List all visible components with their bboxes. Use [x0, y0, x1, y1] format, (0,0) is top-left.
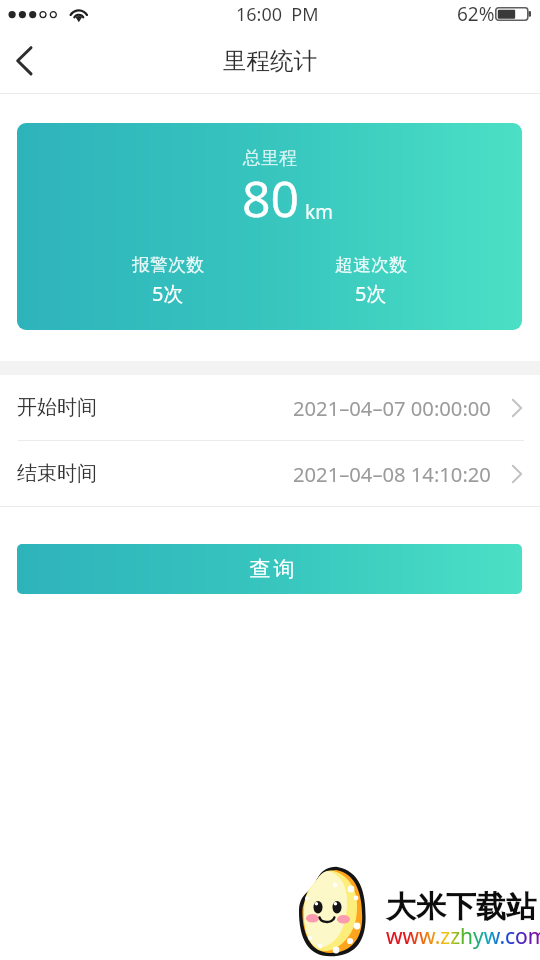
staticText: 2021–04–07 00:00:00 — [293, 394, 491, 422]
staticText: 总里程 — [243, 147, 297, 170]
staticText: 5次 — [152, 280, 184, 307]
staticText: 62% — [457, 1, 495, 27]
staticText: www.zzhyw.com — [386, 922, 540, 951]
button[interactable]: Back — [0, 30, 50, 93]
button[interactable]: 查询 — [17, 544, 522, 594]
button[interactable]: 总里程 — [17, 123, 522, 330]
staticText: 16:00 PM — [236, 2, 319, 27]
staticText: 查询 — [248, 556, 296, 582]
button[interactable]: 开始时间 — [0, 375, 540, 440]
staticText: 结束时间 — [17, 461, 97, 486]
staticText: 报警次数 — [132, 254, 204, 277]
other: Site logo — [297, 864, 369, 960]
staticText: 5次 — [355, 280, 387, 307]
staticText: 大米下载站 — [386, 888, 536, 926]
staticText: 80 — [242, 164, 300, 232]
staticText: km — [305, 199, 333, 225]
staticText: 开始时间 — [17, 395, 97, 420]
button[interactable]: 结束时间 — [0, 441, 540, 506]
staticText: 里程统计 — [223, 46, 317, 76]
staticText: 2021–04–08 14:10:20 — [293, 460, 491, 488]
staticText: 超速次数 — [335, 254, 407, 277]
